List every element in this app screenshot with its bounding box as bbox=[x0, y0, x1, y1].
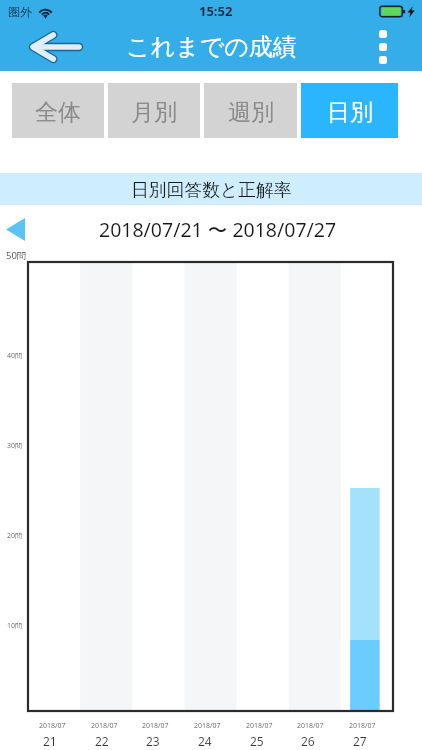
staticText: 50問 bbox=[6, 249, 27, 262]
button[interactable]: 全体 bbox=[12, 83, 104, 138]
staticText: 2018/07 bbox=[39, 721, 66, 731]
staticText: 10問 bbox=[7, 621, 23, 631]
staticText: 24 bbox=[198, 733, 212, 749]
staticText: 2018/07 bbox=[91, 721, 118, 731]
staticText: 20問 bbox=[7, 531, 23, 541]
staticText: 30問 bbox=[7, 441, 23, 451]
staticText: 2018/07 bbox=[246, 721, 273, 731]
staticText: 2018/07/21 〜 2018/07/27 bbox=[99, 216, 337, 243]
button[interactable]: 月別 bbox=[108, 83, 200, 138]
button[interactable]: 日別 bbox=[301, 83, 398, 138]
staticText: 週別 bbox=[228, 98, 274, 127]
staticText: 26 bbox=[301, 733, 315, 749]
button[interactable]: Back bbox=[29, 24, 91, 70]
button[interactable]: More options bbox=[363, 24, 403, 70]
staticText: 日別 bbox=[327, 98, 373, 127]
staticText: 25 bbox=[250, 733, 264, 749]
staticText: これまでの成績 bbox=[126, 32, 297, 62]
staticText: 2018/07 bbox=[194, 721, 221, 731]
button[interactable]: Previous period bbox=[0, 208, 34, 242]
button[interactable]: 週別 bbox=[204, 83, 297, 138]
staticText: 圏外 bbox=[8, 4, 32, 19]
staticText: 全体 bbox=[35, 98, 81, 127]
staticText: 2018/07 bbox=[142, 721, 169, 731]
staticText: 23 bbox=[146, 733, 160, 749]
staticText: 27 bbox=[353, 733, 367, 749]
staticText: 2018/07 bbox=[297, 721, 324, 731]
staticText: 2018/07 bbox=[349, 721, 376, 731]
staticText: 日別回答数と正解率 bbox=[131, 179, 292, 201]
staticText: 22 bbox=[95, 733, 109, 749]
staticText: 21 bbox=[43, 733, 57, 749]
staticText: 40問 bbox=[7, 351, 23, 361]
staticText: 月別 bbox=[131, 98, 177, 127]
staticText: 15:52 bbox=[199, 2, 233, 20]
